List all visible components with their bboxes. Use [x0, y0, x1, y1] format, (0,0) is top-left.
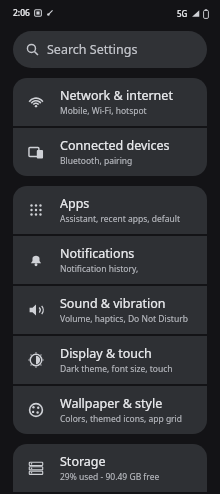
staticText: 29% used - 90.49 GB free — [60, 471, 160, 483]
staticText: Colors, themed icons, app grid — [60, 413, 183, 425]
button[interactable]: Display & touch — [13, 336, 207, 384]
staticText: Notification history, conversations — [60, 263, 195, 275]
staticText: Search Settings — [47, 41, 138, 58]
staticText: Connected devices — [60, 137, 170, 154]
button[interactable]: Apps — [13, 186, 207, 234]
staticText: Notifications — [60, 245, 135, 262]
button[interactable]: Wallpaper & style — [13, 386, 207, 434]
button[interactable]: Notifications — [13, 236, 207, 284]
button[interactable]: Search Settings — [13, 31, 207, 68]
staticText: Storage — [60, 453, 106, 470]
button[interactable]: Network & internet — [13, 78, 207, 126]
button[interactable]: Storage — [13, 444, 207, 492]
staticText: 5G — [177, 8, 188, 19]
staticText: Volume, haptics, Do Not Disturb — [60, 313, 188, 325]
staticText: Wallpaper & style — [60, 395, 163, 412]
staticText: 2:06 — [13, 7, 30, 19]
staticText: Display & touch — [60, 345, 152, 362]
staticText: Network & internet — [60, 87, 173, 104]
staticText: Sound & vibration — [60, 295, 166, 312]
button[interactable]: Sound & vibration — [13, 286, 207, 334]
staticText: Bluetooth, pairing — [60, 155, 133, 167]
staticText: Apps — [60, 195, 90, 212]
button[interactable]: Connected devices — [13, 128, 207, 176]
staticText: Dark theme, font size, touch — [60, 363, 173, 375]
staticText: Assistant, recent apps, default apps — [60, 213, 195, 225]
staticText: Mobile, Wi-Fi, hotspot — [60, 105, 147, 117]
